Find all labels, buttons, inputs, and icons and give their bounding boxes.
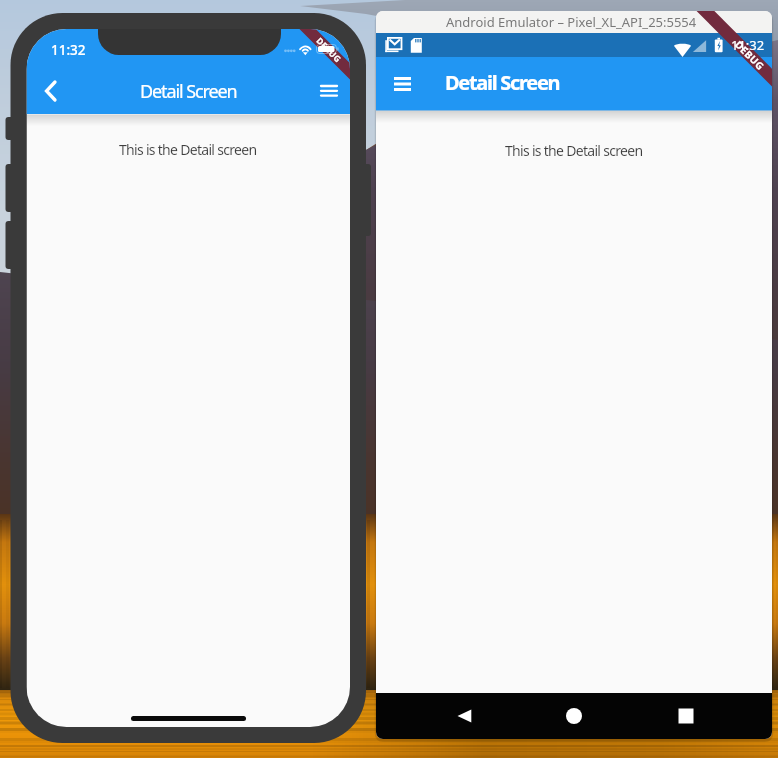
staticText: Detail Screen (140, 79, 237, 104)
staticText: Detail Screen (445, 69, 560, 96)
button[interactable]: Back (36, 77, 64, 105)
button[interactable]: Home (550, 694, 598, 738)
staticText: 11:32 (51, 41, 86, 59)
button[interactable]: Back (440, 694, 488, 738)
button[interactable]: Open navigation menu (387, 69, 417, 99)
staticText: This is the Detail screen (505, 141, 643, 160)
staticText: This is the Detail screen (119, 140, 257, 159)
button[interactable]: Menu (313, 78, 345, 104)
staticText: 11:32 (731, 36, 765, 54)
staticText: Android Emulator – Pixel_XL_API_25:5554 (446, 13, 697, 31)
button[interactable]: Recent apps (662, 694, 710, 738)
